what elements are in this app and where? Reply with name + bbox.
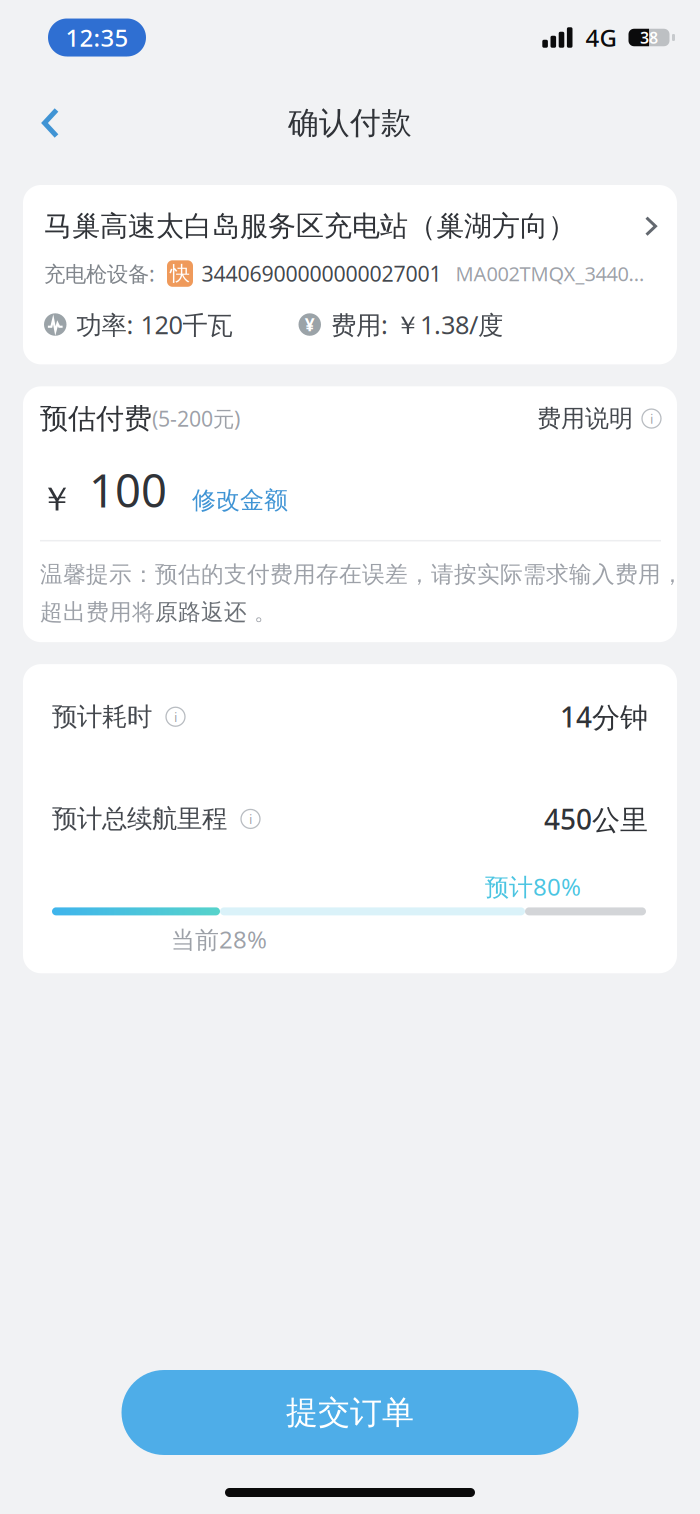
staticText: ¥: [305, 313, 315, 336]
staticText: 当前28%: [171, 923, 267, 955]
staticText: 450公里: [544, 800, 648, 837]
staticText: i: [650, 410, 653, 427]
button[interactable]: 费用说明: [537, 404, 661, 433]
staticText: 12:35: [65, 22, 128, 53]
staticText: 功率: 120千瓦: [76, 308, 232, 341]
staticText: 100: [89, 460, 167, 520]
staticText: i: [249, 810, 252, 828]
staticText: 4G: [585, 22, 616, 53]
button[interactable]: 马巢高速太白岛服务区充电站（巢湖方向）: [0, 185, 700, 364]
staticText: 预计耗时: [52, 701, 152, 732]
staticText: MA002TMQX_3440…: [455, 260, 644, 287]
button[interactable]: 提交订单: [121, 1370, 578, 1455]
staticText: 提交订单: [286, 1393, 414, 1432]
button[interactable]: Back: [18, 89, 83, 156]
staticText: 充电枪设备:: [44, 259, 155, 288]
staticText: 预估付费: [40, 401, 152, 436]
staticText: 预计80%: [485, 870, 581, 902]
staticText: 14分钟: [560, 698, 648, 735]
staticText: ￥: [40, 479, 73, 520]
staticText: 修改金额: [192, 485, 288, 515]
staticText: 马巢高速太白岛服务区充电站（巢湖方向）: [44, 209, 576, 243]
staticText: 38: [640, 27, 658, 48]
button[interactable]: 修改金额: [192, 485, 288, 520]
staticText: 费用说明: [537, 404, 633, 433]
staticText: i: [174, 708, 177, 726]
staticText: 超出费用将: [40, 598, 155, 626]
staticText: 温馨提示：预估的支付费用存在误差，请按实际需求输入费用，: [40, 560, 684, 588]
staticText: (5-200元): [152, 404, 240, 433]
staticText: 预计总续航里程: [52, 803, 227, 834]
staticText: 确认付款: [288, 104, 412, 142]
staticText: 原路返还: [155, 598, 247, 626]
staticText: 。: [247, 598, 277, 626]
staticText: 快: [170, 261, 190, 286]
staticText: 34406900000000027001: [201, 259, 441, 288]
staticText: 费用: ￥1.38/度: [331, 308, 503, 341]
